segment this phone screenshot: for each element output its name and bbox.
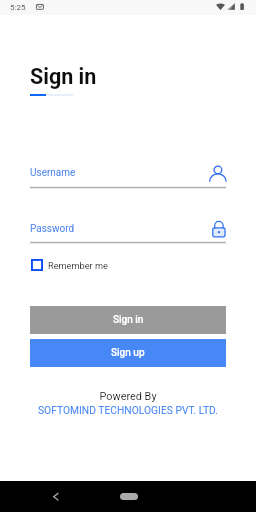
- other: Username: [209, 164, 226, 181]
- button[interactable]: Remember me: [30, 255, 108, 275]
- staticText: Username: [30, 167, 76, 179]
- staticText: Sign up: [111, 347, 145, 359]
- button[interactable]: SOFTOMIND TECHNOLOGIES PVT. LTD.: [0, 404, 256, 416]
- other: Password: [209, 220, 226, 237]
- button[interactable]: Back: [48, 490, 62, 504]
- button[interactable]: Username: [30, 167, 226, 187]
- staticText: Sign in: [113, 314, 144, 326]
- button[interactable]: Home: [120, 493, 138, 500]
- button[interactable]: Sign in: [30, 306, 226, 334]
- staticText: Powered By: [0, 390, 256, 403]
- staticText: 5:25: [10, 3, 26, 12]
- staticText: Password: [30, 223, 75, 235]
- staticText: Remember me: [48, 260, 108, 271]
- staticText: Sign in: [30, 64, 97, 89]
- button[interactable]: Sign up: [30, 339, 226, 367]
- button[interactable]: Password: [30, 223, 226, 242]
